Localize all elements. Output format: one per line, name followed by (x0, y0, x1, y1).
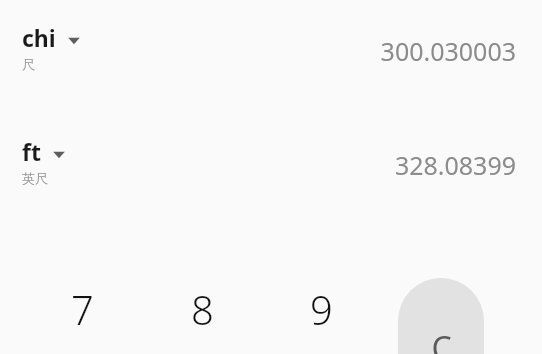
button[interactable]: ft (0, 136, 75, 188)
staticText: chi (22, 22, 56, 53)
staticText: 7 (71, 282, 94, 336)
staticText: C (431, 326, 452, 354)
staticText: 9 (310, 282, 333, 336)
button[interactable]: 7 (52, 282, 112, 336)
staticText: 328.08399 (394, 148, 516, 182)
staticText: 英尺 (22, 170, 48, 186)
button[interactable]: 9 (291, 282, 351, 336)
staticText: ft (22, 136, 41, 167)
button[interactable]: chi (0, 22, 90, 74)
button[interactable]: 8 (172, 282, 232, 336)
button[interactable]: Clear (398, 278, 484, 354)
staticText: 300.030003 (380, 34, 516, 68)
staticText: 8 (191, 282, 214, 336)
staticText: 尺 (22, 56, 35, 72)
